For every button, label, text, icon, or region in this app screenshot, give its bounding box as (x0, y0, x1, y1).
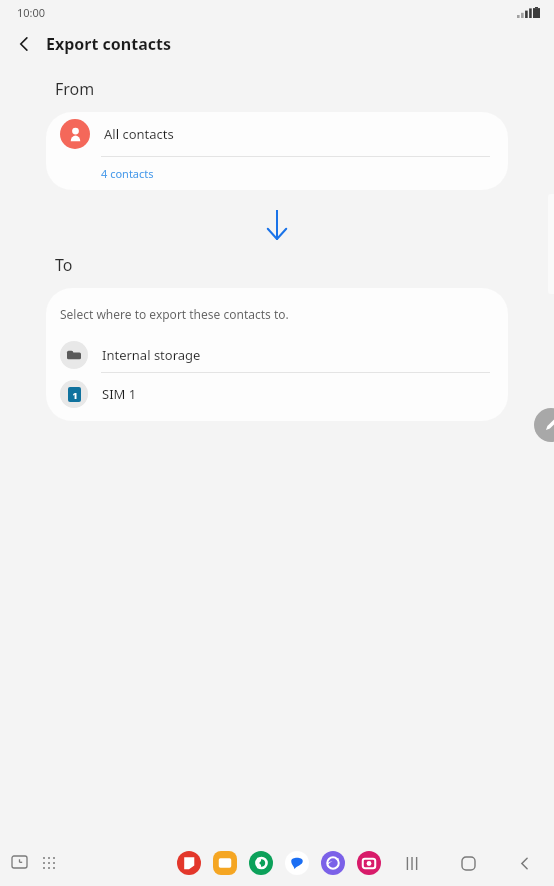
button[interactable]: Back (8, 28, 40, 60)
staticText: 10:00 (17, 5, 46, 20)
button[interactable]: App (249, 851, 273, 875)
button[interactable]: All apps (36, 850, 62, 876)
staticText: To (55, 254, 73, 276)
staticText: Select where to export these contacts to… (60, 306, 289, 322)
button[interactable]: App (285, 851, 309, 875)
staticText: Internal storage (102, 346, 201, 364)
button[interactable]: 4 contacts (46, 157, 508, 190)
button[interactable]: Recent apps (6, 850, 32, 876)
staticText: Export contacts (46, 33, 171, 55)
staticText: 1 (72, 389, 78, 401)
button[interactable]: App (177, 851, 201, 875)
staticText: From (55, 78, 95, 100)
staticText: 4 contacts (101, 166, 154, 181)
staticText: All contacts (104, 125, 174, 143)
button[interactable]: Home (450, 845, 486, 881)
button[interactable]: App (213, 851, 237, 875)
button[interactable]: All contacts (46, 112, 508, 156)
button[interactable]: 1 (46, 373, 508, 415)
button[interactable]: Back (506, 845, 542, 881)
button[interactable]: Recents (394, 845, 430, 881)
button[interactable]: Internal storage (46, 338, 508, 372)
staticText: SIM 1 (102, 385, 137, 403)
button[interactable]: App (321, 851, 345, 875)
button[interactable]: App (357, 851, 381, 875)
button[interactable]: Edit (534, 408, 554, 442)
